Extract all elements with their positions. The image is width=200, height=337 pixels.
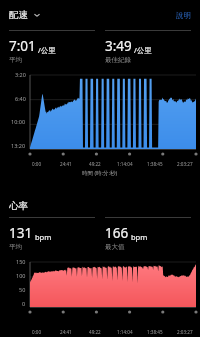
staticText: 7:01 — [9, 37, 36, 55]
staticText: 2:03:27 — [177, 329, 193, 335]
staticText: 心率 — [9, 200, 28, 212]
staticText: 平均 — [9, 243, 22, 251]
staticText: /公里 — [134, 45, 152, 55]
staticText: 0:00 — [32, 161, 42, 167]
other: 展開 — [33, 11, 41, 19]
staticText: 0 — [22, 300, 26, 307]
staticText: 時間 (時:分:秒) — [82, 169, 118, 177]
staticText: 24:41 — [60, 329, 72, 335]
staticText: 最佳紀錄 — [105, 56, 131, 64]
staticText: 49:22 — [89, 161, 101, 167]
button[interactable]: 心率 — [9, 200, 28, 212]
staticText: 13:20 — [11, 142, 26, 149]
staticText: 49:22 — [89, 329, 101, 335]
staticText: 100 — [16, 272, 26, 279]
staticText: 3:20 — [15, 71, 26, 78]
staticText: 最大值 — [105, 243, 125, 251]
staticText: bpm — [131, 232, 148, 242]
staticText: 0:00 — [32, 329, 42, 335]
staticText: 1:38:45 — [147, 329, 163, 335]
staticText: 3:49 — [105, 37, 132, 55]
staticText: 配速 — [9, 9, 28, 21]
button[interactable]: 說明 — [176, 11, 191, 20]
staticText: 說明 — [176, 11, 191, 20]
staticText: bpm — [35, 232, 52, 242]
staticText: 166 — [105, 224, 129, 242]
staticText: 150 — [16, 258, 26, 265]
button[interactable]: 3:49 — [105, 30, 191, 64]
button[interactable]: 7:01 — [9, 30, 95, 64]
staticText: 1:38:45 — [147, 161, 163, 167]
staticText: /公里 — [38, 45, 56, 55]
staticText: 6:40 — [15, 95, 26, 102]
staticText: 1:14:04 — [117, 161, 133, 167]
staticText: 131 — [9, 224, 33, 242]
button[interactable]: 131 — [9, 217, 95, 251]
button[interactable]: 配速 — [9, 9, 41, 21]
staticText: 24:41 — [60, 161, 72, 167]
staticText: 1:14:04 — [117, 329, 133, 335]
staticText: 2:03:27 — [177, 161, 193, 167]
staticText: 10:00 — [11, 118, 26, 125]
staticText: 50 — [19, 286, 26, 293]
button[interactable]: 166 — [105, 217, 191, 251]
staticText: 平均 — [9, 56, 22, 64]
